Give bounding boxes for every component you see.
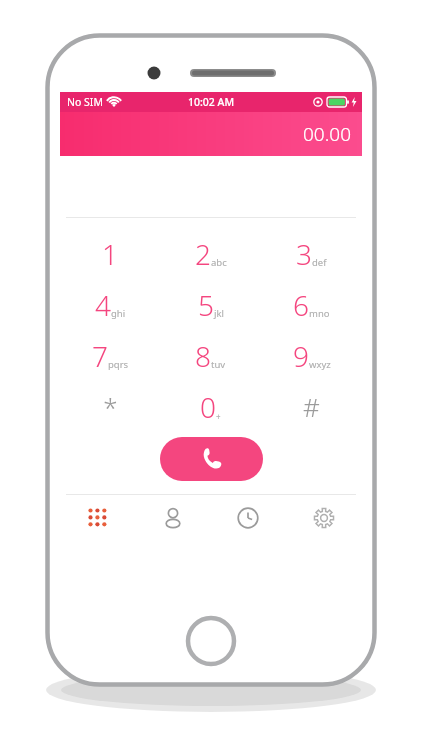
- button[interactable]: Settings: [286, 495, 362, 540]
- staticText: 4: [95, 286, 111, 324]
- button[interactable]: Keypad: [60, 495, 135, 540]
- button[interactable]: 7: [60, 330, 160, 381]
- staticText: wxyz: [309, 358, 331, 371]
- button[interactable]: 4: [60, 279, 160, 330]
- button[interactable]: 8: [160, 330, 261, 381]
- staticText: tuv: [211, 358, 226, 371]
- staticText: No SIM: [67, 95, 103, 109]
- button[interactable]: 1: [60, 228, 160, 279]
- staticText: 2: [195, 235, 211, 273]
- staticText: 1: [102, 235, 118, 273]
- button[interactable]: 9: [261, 330, 362, 381]
- staticText: #: [303, 389, 320, 424]
- staticText: 7: [92, 337, 108, 375]
- staticText: mno: [309, 307, 330, 320]
- button[interactable]: 2: [160, 228, 261, 279]
- staticText: def: [312, 256, 327, 269]
- staticText: 0: [200, 388, 216, 426]
- button[interactable]: Contacts: [135, 495, 210, 540]
- button[interactable]: 5: [160, 279, 261, 330]
- staticText: 10:02 AM: [188, 95, 235, 109]
- staticText: 3: [296, 235, 312, 273]
- button[interactable]: *: [60, 381, 160, 432]
- staticText: +: [216, 411, 221, 422]
- button[interactable]: 3: [261, 228, 362, 279]
- button[interactable]: #: [261, 381, 362, 432]
- button[interactable]: Home: [185, 615, 237, 667]
- staticText: 6: [293, 286, 309, 324]
- button[interactable]: Call: [160, 437, 263, 481]
- staticText: 9: [293, 337, 309, 375]
- staticText: jkl: [214, 307, 224, 320]
- button[interactable]: 6: [261, 279, 362, 330]
- button[interactable]: Recents: [210, 495, 286, 540]
- staticText: 5: [198, 286, 214, 324]
- button[interactable]: 0: [160, 381, 261, 432]
- staticText: pqrs: [108, 358, 129, 371]
- staticText: 8: [195, 337, 211, 375]
- staticText: ghi: [111, 307, 126, 320]
- staticText: *: [103, 389, 118, 424]
- staticText: abc: [211, 256, 227, 269]
- staticText: 00.00: [303, 121, 352, 147]
